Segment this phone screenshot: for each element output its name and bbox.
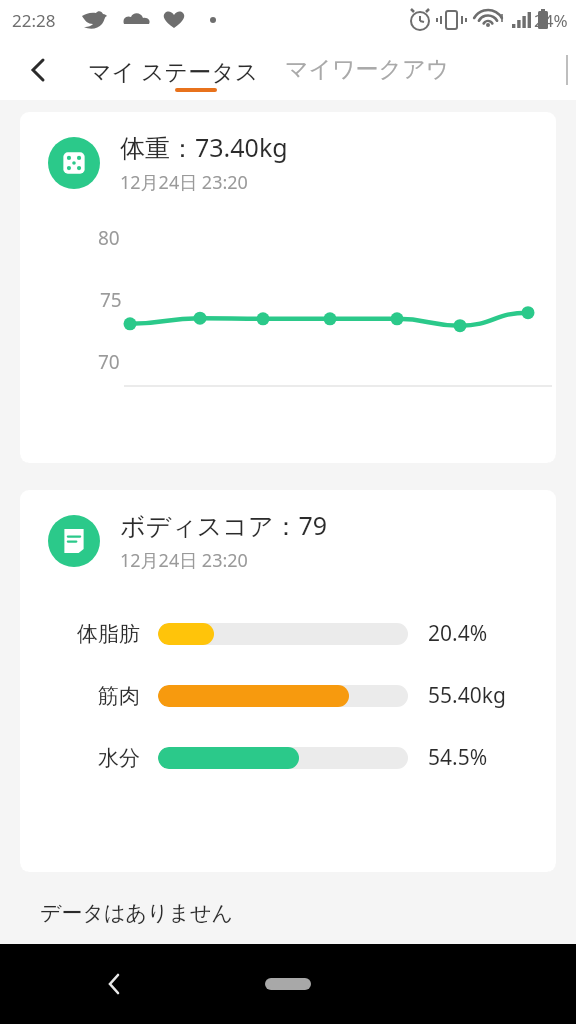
staticText: 70 [98, 349, 120, 375]
staticText: 12月24日 23:20 [120, 170, 248, 195]
button[interactable]: 水分 [60, 743, 532, 772]
staticText: ボディスコア：79 [120, 508, 328, 542]
staticText: マイワークアウ [285, 55, 450, 84]
staticText: 75 [100, 287, 122, 313]
staticText: マイ ステータス [88, 55, 259, 86]
staticText: 体重：73.40kg [120, 130, 288, 164]
staticText: 55.40kg [428, 681, 506, 710]
button[interactable]: ボディスコア：79 [20, 490, 556, 872]
staticText: 80 [98, 225, 120, 251]
staticText: 筋肉 [98, 683, 140, 709]
staticText: 54.5% [428, 743, 488, 772]
button[interactable]: 体脂肪 [60, 619, 532, 648]
staticText: 水分 [98, 745, 140, 771]
button[interactable]: 体重：73.40kg [20, 112, 556, 463]
button[interactable]: Back [14, 46, 62, 94]
button[interactable]: マイワークアウ [285, 55, 450, 84]
staticText: 12月24日 23:20 [120, 548, 248, 573]
staticText: 体脂肪 [77, 621, 140, 647]
button[interactable]: 筋肉 [60, 681, 532, 710]
button[interactable]: Back [90, 960, 138, 1008]
button[interactable]: Home [265, 978, 311, 990]
staticText: 24% [534, 9, 568, 32]
staticText: 20.4% [428, 619, 488, 648]
staticText: 22:28 [12, 9, 56, 32]
button[interactable]: マイ ステータス [88, 55, 259, 86]
staticText: データはありません [40, 900, 233, 926]
